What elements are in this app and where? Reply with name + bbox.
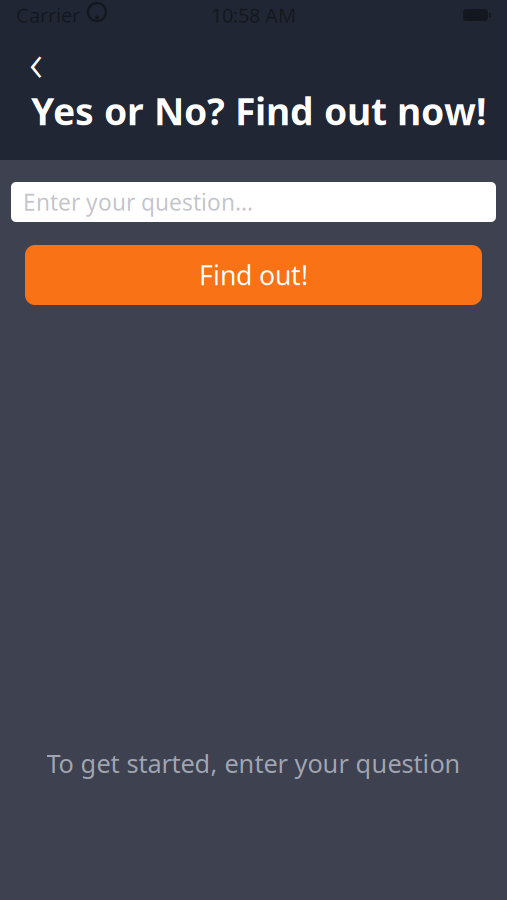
staticText: Find out!: [199, 257, 308, 293]
staticText: Yes or No? Find out now!: [31, 86, 487, 136]
staticText: ‹: [29, 26, 43, 96]
staticText: Enter your question...: [23, 187, 253, 217]
button[interactable]: Back: [14, 44, 58, 78]
staticText: 10:58 AM: [211, 2, 296, 28]
staticText: Carrier: [16, 2, 80, 28]
staticText: To get started, enter your question: [46, 746, 460, 780]
button[interactable]: Find out!: [25, 245, 482, 305]
